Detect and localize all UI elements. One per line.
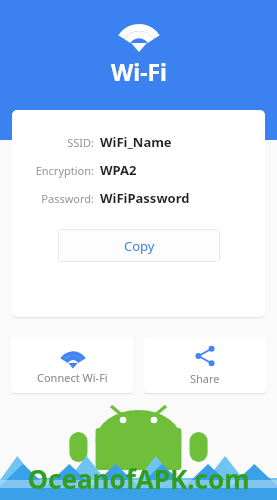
staticText: Share — [190, 371, 220, 386]
staticText: Encryption: — [35, 163, 94, 178]
staticText: Wi-Fi — [111, 56, 167, 87]
staticText: SSID: — [67, 135, 94, 150]
staticText: WiFiPassword — [100, 189, 190, 207]
staticText: Password: — [41, 191, 94, 206]
button[interactable]: Share — [144, 337, 266, 393]
staticText: WPA2 — [100, 161, 137, 179]
staticText: WiFi_Name — [100, 133, 172, 151]
staticText: OceanofAPK.com — [27, 461, 250, 496]
staticText: Connect Wi-Fi — [37, 370, 108, 385]
button[interactable]: Connect Wi-Fi — [11, 337, 133, 393]
staticText: Copy — [124, 237, 155, 255]
button[interactable]: Copy — [58, 229, 220, 262]
